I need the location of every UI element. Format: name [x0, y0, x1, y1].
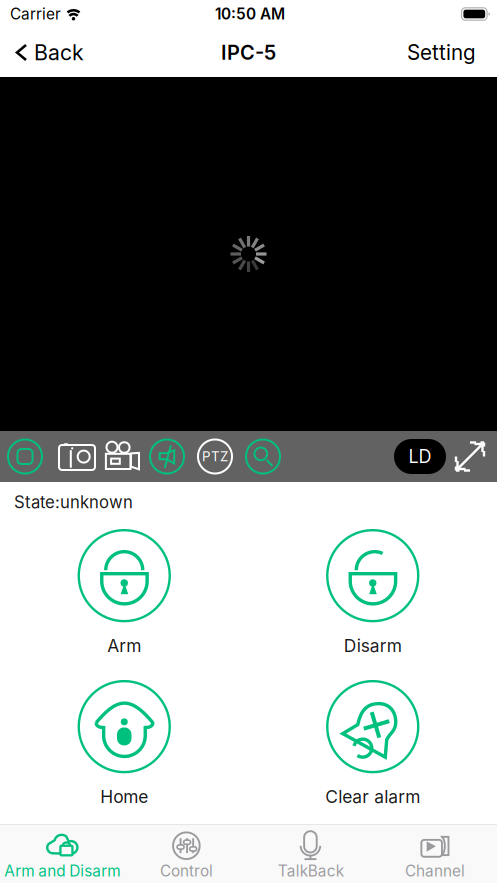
- button[interactable]: Setting: [407, 32, 497, 73]
- button[interactable]: Zoom: [239, 439, 287, 473]
- staticText: LD: [408, 446, 431, 467]
- button[interactable]: Snapshot: [49, 436, 97, 476]
- button[interactable]: Stop: [1, 439, 49, 473]
- button[interactable]: Channel: [373, 827, 497, 880]
- staticText: Arm and Disarm: [4, 862, 120, 880]
- button[interactable]: Arm and Disarm: [0, 827, 124, 880]
- staticText: Clear alarm: [325, 786, 420, 807]
- button[interactable]: Back: [0, 32, 84, 73]
- button[interactable]: Disarm: [327, 530, 418, 656]
- button[interactable]: PTZ: [191, 439, 239, 473]
- staticText: 10:50 AM: [215, 5, 285, 23]
- staticText: Control: [160, 862, 213, 880]
- staticText: Channel: [405, 862, 465, 880]
- button[interactable]: Record: [97, 436, 143, 476]
- button[interactable]: Mute: [143, 439, 191, 473]
- button[interactable]: Clear alarm: [325, 681, 420, 807]
- staticText: State:unknown: [14, 492, 133, 512]
- button[interactable]: LD: [394, 439, 446, 474]
- staticText: Arm: [107, 635, 141, 656]
- staticText: Home: [100, 786, 148, 807]
- button[interactable]: Home: [79, 681, 170, 807]
- staticText: Disarm: [344, 635, 402, 656]
- staticText: PTZ: [202, 448, 228, 464]
- button[interactable]: TalkBack: [248, 827, 373, 880]
- staticText: Back: [34, 40, 84, 65]
- button[interactable]: Arm: [79, 530, 170, 656]
- staticText: IPC-5: [221, 40, 276, 65]
- button[interactable]: Full screen: [446, 438, 497, 474]
- staticText: Carrier: [10, 5, 61, 23]
- staticText: TalkBack: [278, 862, 344, 880]
- button[interactable]: Control: [124, 827, 248, 880]
- staticText: Setting: [407, 40, 476, 65]
